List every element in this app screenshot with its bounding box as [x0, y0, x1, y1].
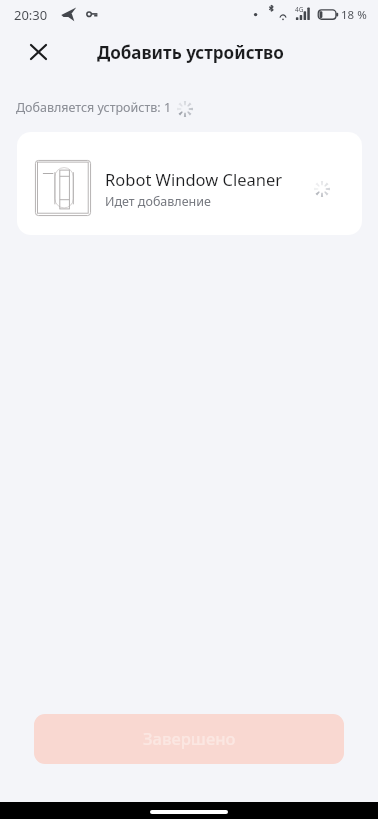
staticText: Идет добавление: [105, 193, 211, 210]
staticText: Добавить устройство: [97, 41, 284, 64]
button[interactable]: Close: [22, 37, 54, 69]
staticText: Завершено: [143, 727, 236, 749]
button[interactable]: Завершено: [34, 714, 344, 764]
staticText: 4G: [295, 5, 304, 14]
staticText: 20:30: [14, 6, 48, 24]
staticText: Robot Window Cleaner: [105, 168, 283, 190]
staticText: 18 %: [341, 7, 367, 23]
button[interactable]: Robot Window Cleaner: [17, 132, 362, 235]
staticText: Добавляется устройств: 1: [16, 99, 172, 116]
